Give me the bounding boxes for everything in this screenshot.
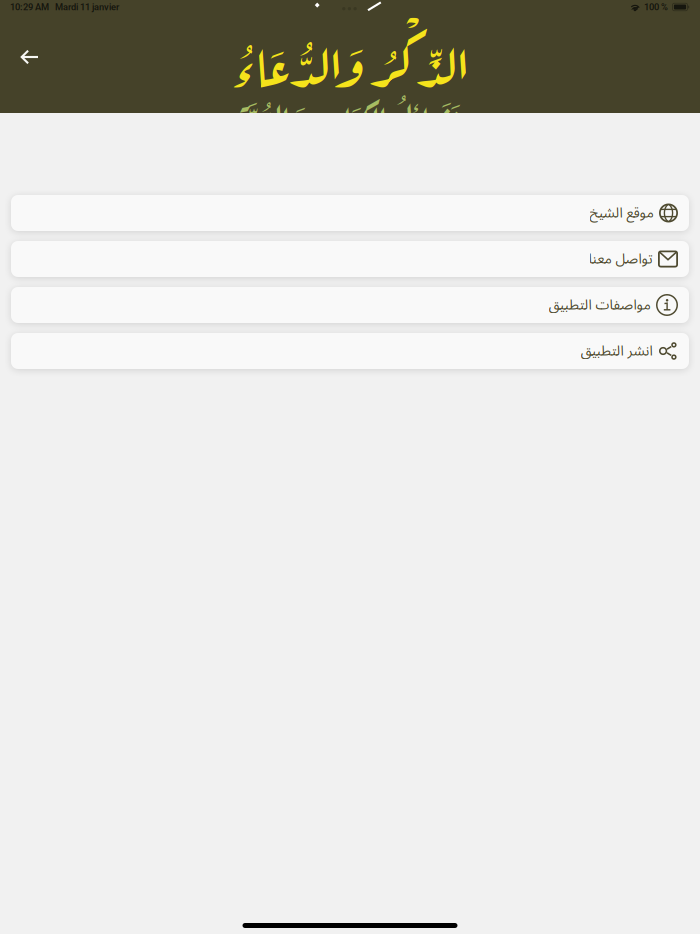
button[interactable]: مواصفات التطبيق xyxy=(11,287,689,323)
staticText: 100 % xyxy=(644,1,668,12)
staticText: الذِّكْرُ وَالدُّعَاءُ xyxy=(230,19,469,101)
button[interactable]: تواصل معنا xyxy=(11,241,689,277)
button[interactable]: Back xyxy=(0,0,40,40)
button[interactable]: انشر التطبيق xyxy=(11,333,689,369)
staticText: Mardi 11 janvier xyxy=(55,1,119,12)
staticText: تواصل معنا xyxy=(588,244,652,274)
button[interactable]: موقع الشيخ xyxy=(11,195,689,231)
staticText: انشر التطبيق xyxy=(580,336,652,366)
staticText: مواصفات التطبيق xyxy=(548,290,650,320)
staticText: موقع الشيخ xyxy=(589,198,653,228)
staticText: 10:29 AM xyxy=(10,1,49,12)
staticText: فَضَائِلُ الكِتَابِ وَالسُّنَّة xyxy=(236,86,463,145)
